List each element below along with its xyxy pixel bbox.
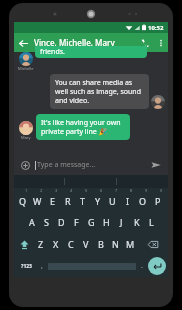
button[interactable]: 5: [75, 188, 90, 211]
staticText: 0: [160, 188, 163, 193]
staticText: Vince, Michelle, Mary: [34, 37, 115, 48]
staticText: L: [149, 216, 154, 228]
staticText: D: [58, 216, 65, 228]
staticText: H: [103, 216, 110, 228]
staticText: G: [88, 216, 95, 228]
staticText: You can share media as well such as imag…: [55, 78, 144, 105]
staticText: A: [29, 216, 35, 228]
button[interactable]: Enter: [148, 257, 166, 275]
button[interactable]: 7: [105, 188, 120, 211]
staticText: 10:52: [148, 24, 164, 32]
staticText: 4: [70, 188, 73, 193]
staticText: K: [134, 216, 140, 228]
staticText: 7: [115, 188, 118, 193]
button[interactable]: Call: [136, 34, 153, 51]
button[interactable]: 3: [45, 188, 60, 211]
staticText: ?123: [21, 263, 32, 270]
staticText: 5: [85, 188, 88, 193]
button[interactable]: .: [136, 255, 148, 277]
button[interactable]: H: [99, 211, 114, 233]
button[interactable]: More options: [153, 35, 168, 50]
button[interactable]: M: [123, 233, 138, 255]
staticText: E: [50, 195, 56, 207]
staticText: 9: [145, 188, 148, 193]
staticText: Type a message...: [37, 160, 96, 170]
button[interactable]: Attach: [19, 159, 32, 172]
staticText: J: [120, 216, 123, 228]
staticText: Mary: [21, 135, 31, 140]
staticText: R: [65, 195, 71, 207]
button[interactable]: 8: [120, 188, 135, 211]
button[interactable]: Send: [149, 158, 163, 172]
button[interactable]: G: [84, 211, 99, 233]
button[interactable]: 0: [150, 188, 165, 211]
button[interactable]: X: [48, 233, 63, 255]
button[interactable]: C: [63, 233, 78, 255]
staticText: I: [126, 195, 130, 207]
staticText: It's like having your own private party …: [41, 118, 125, 136]
staticText: 1: [25, 188, 28, 193]
staticText: C: [68, 238, 74, 250]
staticText: X: [53, 238, 59, 250]
button[interactable]: friends.: [35, 46, 147, 58]
staticText: Michelle: [18, 66, 34, 71]
staticText: .: [141, 261, 143, 271]
staticText: 3: [55, 188, 58, 193]
button[interactable]: J: [114, 211, 129, 233]
button[interactable]: 4: [60, 188, 75, 211]
button[interactable]: 2: [30, 188, 45, 211]
staticText: M: [126, 238, 135, 250]
button[interactable]: B: [93, 233, 108, 255]
button[interactable]: F: [69, 211, 84, 233]
staticText: W: [33, 195, 42, 207]
staticText: 6: [100, 188, 103, 193]
button[interactable]: ,: [36, 255, 48, 277]
button[interactable]: Type a message...: [35, 160, 149, 170]
staticText: ,: [41, 261, 43, 271]
button[interactable]: 6: [90, 188, 105, 211]
button[interactable]: S: [39, 211, 54, 233]
staticText: N: [112, 238, 119, 250]
button[interactable]: Back: [14, 34, 32, 52]
button[interactable]: V: [78, 233, 93, 255]
staticText: O: [139, 195, 147, 207]
button[interactable]: D: [54, 211, 69, 233]
button[interactable]: L: [144, 211, 159, 233]
button[interactable]: You can share media as well such as imag…: [50, 74, 149, 109]
button[interactable]: Shift: [15, 233, 33, 255]
button[interactable]: Backspace: [138, 233, 167, 255]
staticText: 2: [40, 188, 43, 193]
button[interactable]: 1: [15, 188, 30, 211]
staticText: U: [109, 195, 116, 207]
staticText: F: [74, 216, 79, 228]
staticText: Y: [95, 195, 101, 207]
button[interactable]: A: [24, 211, 39, 233]
staticText: 8: [130, 188, 133, 193]
staticText: B: [98, 238, 104, 250]
button[interactable]: ?123: [16, 255, 36, 277]
staticText: S: [44, 216, 49, 228]
staticText: Z: [38, 238, 44, 250]
staticText: T: [80, 195, 86, 207]
button[interactable]: N: [108, 233, 123, 255]
staticText: V: [83, 238, 89, 250]
staticText: Q: [19, 195, 27, 207]
button[interactable]: Z: [33, 233, 48, 255]
staticText: friends.: [40, 47, 65, 57]
button[interactable]: 9: [135, 188, 150, 211]
staticText: P: [155, 195, 161, 207]
button[interactable]: It's like having your own private party …: [36, 114, 130, 140]
button[interactable]: K: [129, 211, 144, 233]
